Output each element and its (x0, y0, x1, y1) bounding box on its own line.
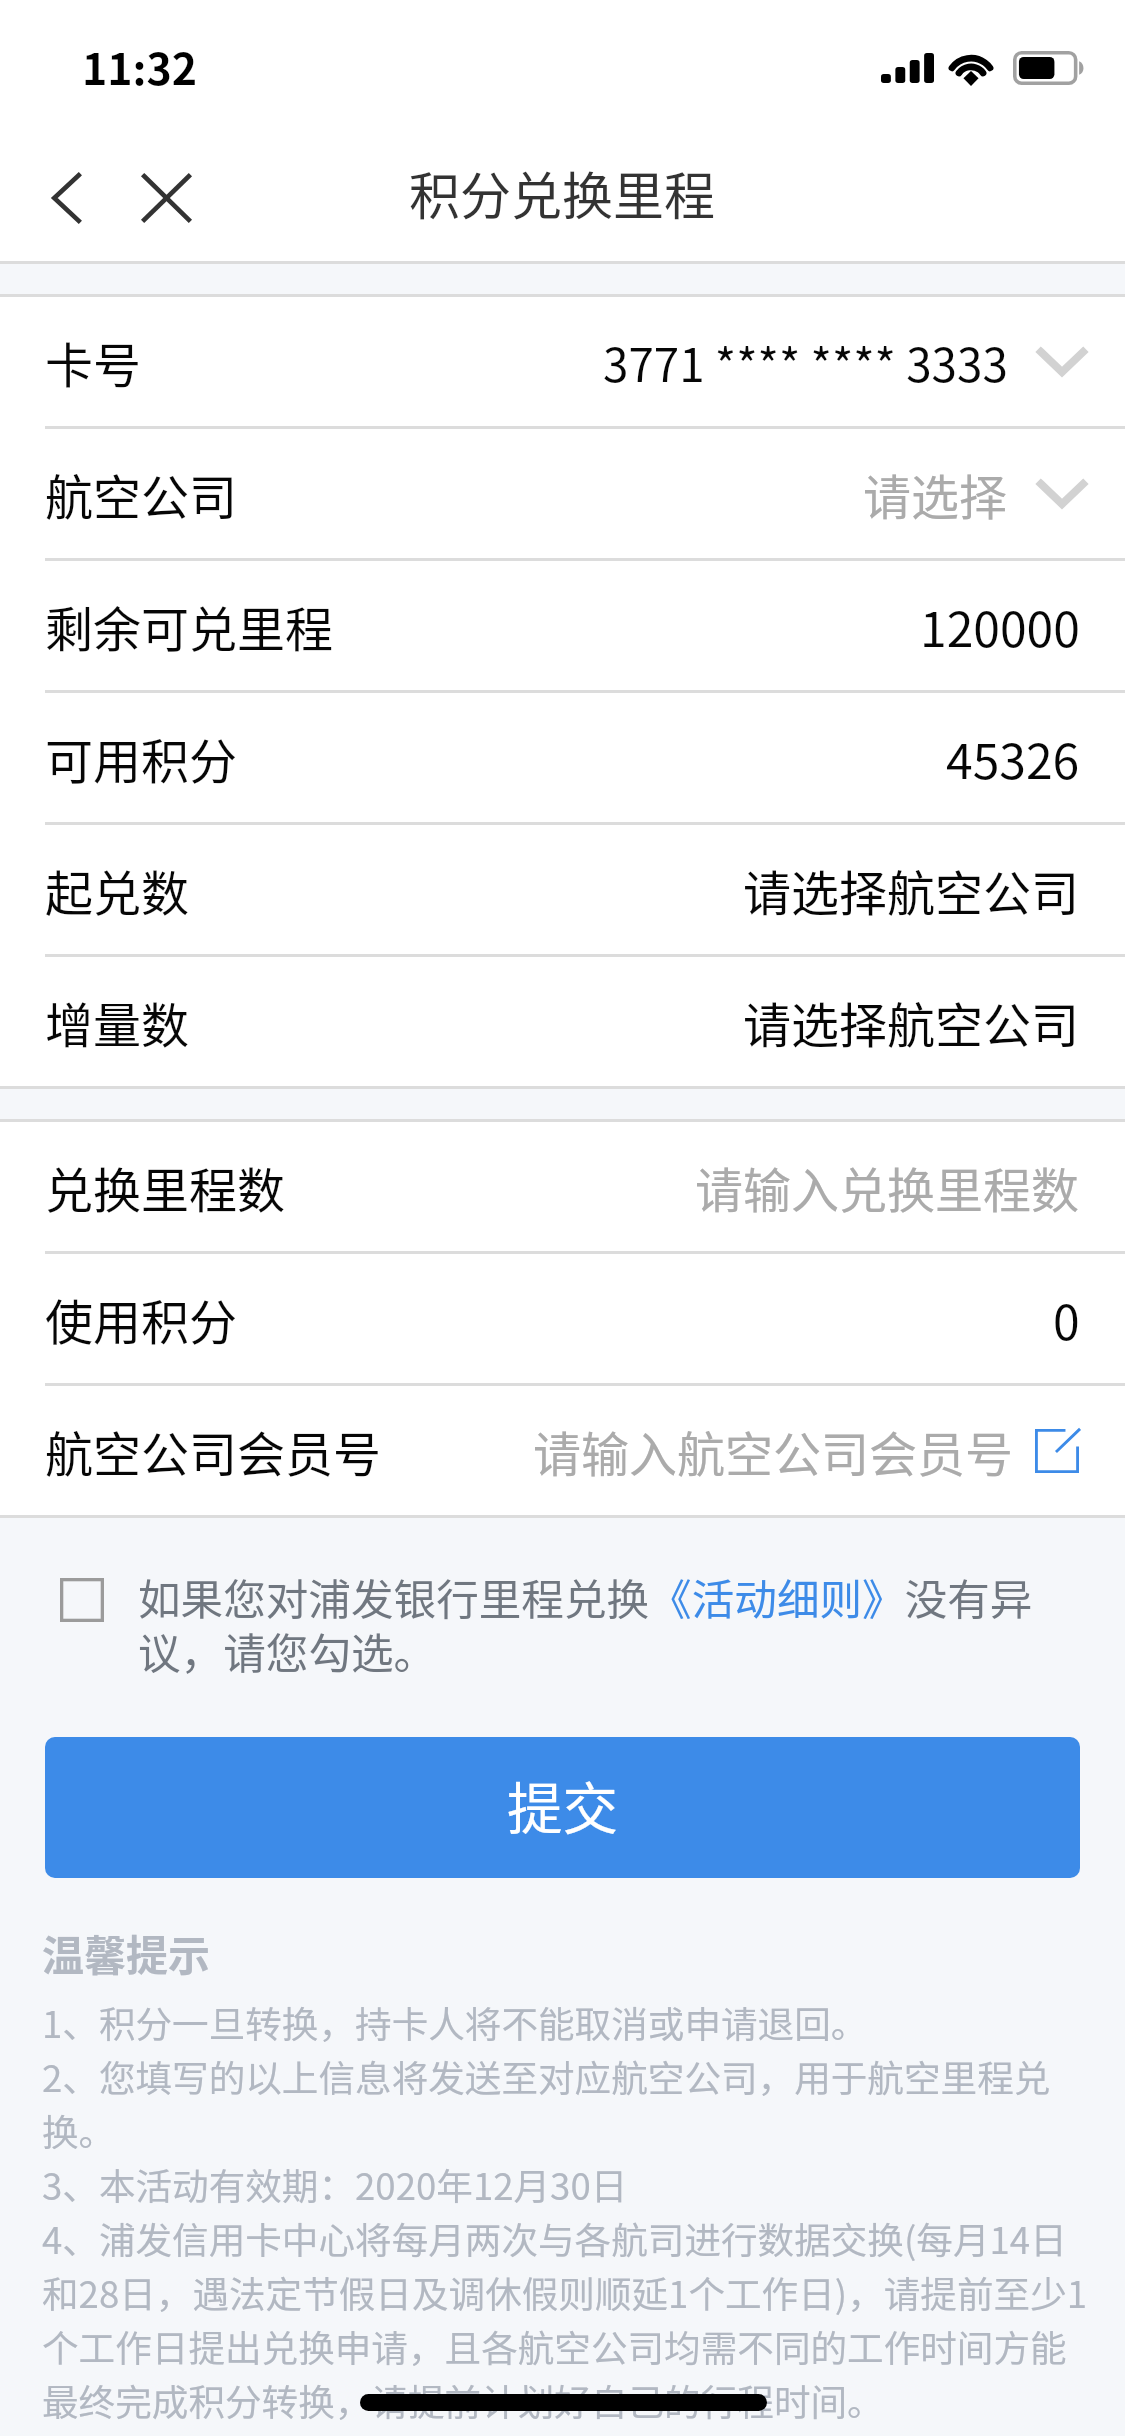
staticText: 兑换里程数 (45, 1152, 286, 1222)
staticText: 卡号 (45, 327, 142, 397)
staticText: 请输入兑换里程数 (695, 1152, 1080, 1222)
staticText: 120000 (920, 591, 1080, 661)
button[interactable]: 剩余可兑里程 (0, 561, 1125, 693)
staticText: 3771 **** **** 3333 (603, 329, 1008, 395)
staticText: 航空公司会员号 (45, 1416, 382, 1486)
button[interactable]: 起兑数 (0, 825, 1125, 957)
staticText: 1、积分一旦转换，持卡人将不能取消或申请退回。 2、您填写的以上信息将发送至对应… (42, 1995, 1101, 2427)
button[interactable]: 提交 (45, 1737, 1080, 1878)
staticText: 45326 (946, 723, 1080, 793)
button[interactable]: Edit (1035, 1429, 1079, 1473)
staticText: 如果您对浦发银行里程兑换《活动细则》没有异议，请您勾选。 (138, 1566, 1077, 1680)
button[interactable]: 卡号 (0, 297, 1125, 429)
staticText: 11:32 (82, 35, 198, 97)
staticText: 剩余可兑里程 (45, 591, 334, 661)
staticText: 请选择航空公司 (743, 987, 1080, 1057)
staticText: 增量数 (45, 987, 190, 1057)
staticText: 温馨提示 (42, 1922, 211, 1983)
button[interactable]: 航空公司 (0, 429, 1125, 558)
staticText: 请输入航空公司会员号 (533, 1416, 1014, 1486)
staticText: 可用积分 (45, 723, 238, 793)
staticText: 起兑数 (45, 855, 190, 925)
button[interactable]: 可用积分 (0, 693, 1125, 825)
staticText: 使用积分 (45, 1284, 238, 1354)
button[interactable]: 兑换里程数 (0, 1122, 1125, 1254)
staticText: 请选择航空公司 (743, 855, 1080, 925)
staticText: 请选择 (863, 459, 1008, 529)
staticText: 提交 (507, 1765, 619, 1845)
button[interactable]: 使用积分 (0, 1254, 1125, 1386)
staticText: 航空公司 (45, 459, 238, 529)
button[interactable]: 航空公司会员号 (0, 1386, 1125, 1515)
staticText: 0 (1053, 1284, 1080, 1354)
button[interactable]: 增量数 (0, 957, 1125, 1086)
button[interactable]: 如果您对浦发银行里程兑换《活动细则》没有异议，请您勾选。 (57, 1566, 1077, 1680)
staticText: 积分兑换里程 (409, 156, 716, 230)
button[interactable]: Close (99, 135, 234, 261)
button[interactable]: Back (0, 135, 99, 261)
